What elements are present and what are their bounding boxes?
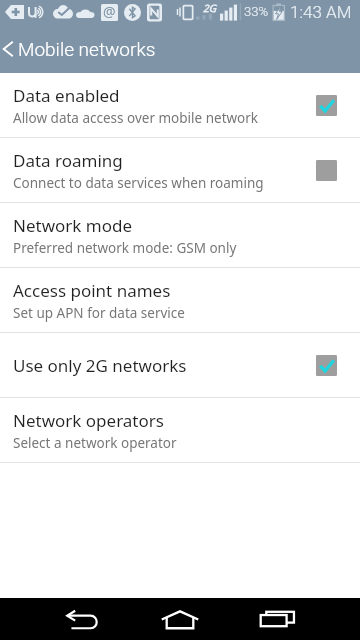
staticText: 1:43 AM: [290, 2, 352, 22]
staticText: Connect to data services when roaming: [13, 174, 264, 192]
staticText: Set up APN for data service: [13, 304, 185, 322]
button[interactable]: Toggle Data roaming: [316, 160, 337, 181]
staticText: Access point names: [13, 279, 171, 302]
staticText: Preferred network mode: GSM only: [13, 239, 237, 257]
button[interactable]: Toggle Data enabled: [316, 95, 337, 116]
button[interactable]: Network mode: [0, 203, 360, 267]
staticText: Allow data access over mobile network: [13, 109, 259, 127]
staticText: Mobile networks: [18, 38, 156, 60]
button[interactable]: Toggle Use only 2G networks: [316, 355, 337, 376]
staticText: 2G: [203, 1, 216, 15]
staticText: Data roaming: [13, 149, 123, 172]
staticText: Select a network operator: [13, 434, 177, 452]
button[interactable]: Recent apps: [238, 598, 317, 640]
button[interactable]: Network operators: [0, 398, 360, 462]
button[interactable]: Access point names: [0, 268, 360, 332]
button[interactable]: Use only 2G networks: [0, 333, 360, 397]
staticText: Use only 2G networks: [13, 354, 187, 377]
staticText: @: [103, 2, 116, 21]
button[interactable]: Back: [43, 598, 122, 640]
button[interactable]: Data roaming: [0, 138, 360, 202]
staticText: Network mode: [13, 214, 133, 237]
staticText: Data enabled: [13, 84, 120, 107]
button[interactable]: Navigate up: [0, 24, 15, 73]
button[interactable]: Home: [140, 598, 219, 640]
staticText: 33%: [244, 4, 269, 19]
staticText: Network operators: [13, 409, 164, 432]
button[interactable]: Data enabled: [0, 73, 360, 137]
